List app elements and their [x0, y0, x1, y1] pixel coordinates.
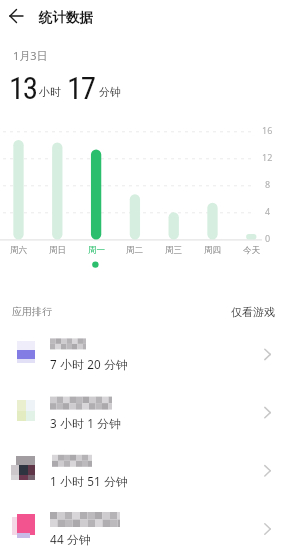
staticText: 今天 — [243, 245, 261, 256]
button[interactable] — [0, 332, 287, 390]
button[interactable] — [0, 448, 287, 506]
staticText: 1月3日 — [13, 48, 48, 63]
staticText: 仅看游戏 — [231, 305, 275, 319]
staticText: 44 分钟 — [50, 531, 91, 547]
staticText: 3 小时 1 分钟 — [50, 415, 122, 431]
staticText: 8 — [265, 178, 271, 190]
staticText: 统计数据 — [39, 9, 93, 26]
staticText: 周六 — [10, 245, 28, 256]
staticText: 周一 — [88, 245, 106, 256]
staticText: 周四 — [204, 245, 222, 256]
staticText: 7 小时 20 分钟 — [50, 356, 128, 372]
staticText: 小时 — [39, 85, 61, 99]
button[interactable] — [0, 390, 287, 448]
staticText: 0 — [265, 232, 271, 244]
button[interactable]: 仅看游戏 — [225, 298, 279, 322]
staticText: 应用排行 — [12, 305, 52, 318]
staticText: 周日 — [49, 245, 67, 256]
staticText: 12 — [262, 151, 273, 163]
staticText: 13 — [9, 70, 37, 106]
button[interactable] — [4, 4, 30, 28]
staticText: 周三 — [165, 245, 183, 256]
staticText: 4 — [265, 205, 271, 217]
staticText: 分钟 — [99, 85, 121, 99]
staticText: 16 — [262, 124, 273, 136]
staticText: 周二 — [126, 245, 144, 256]
staticText: 17 — [67, 70, 95, 106]
staticText: 1 小时 51 分钟 — [50, 473, 128, 489]
button[interactable] — [0, 507, 287, 553]
